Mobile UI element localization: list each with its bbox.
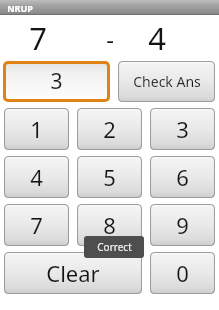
button[interactable]: 3 [150, 108, 215, 150]
staticText: 7 [29, 17, 47, 59]
staticText: 4 [30, 162, 43, 192]
staticText: Check Ans [133, 72, 201, 91]
staticText: 8 [103, 210, 116, 240]
button[interactable]: 8 [77, 204, 142, 246]
staticText: 5 [103, 162, 116, 192]
staticText: NRUP [7, 2, 33, 14]
staticText: 0 [176, 258, 189, 288]
staticText: 9 [176, 210, 189, 240]
button[interactable]: 4 [4, 156, 69, 198]
staticText: 4 [148, 17, 166, 59]
staticText: 6 [176, 162, 189, 192]
staticText: 2 [103, 114, 116, 144]
button[interactable]: 5 [77, 156, 142, 198]
staticText: Clear [46, 258, 100, 288]
button[interactable]: Clear [4, 252, 142, 294]
button[interactable]: 6 [150, 156, 215, 198]
button[interactable]: 9 [150, 204, 215, 246]
other: Correct [84, 236, 144, 258]
button[interactable]: 7 [4, 204, 69, 246]
button[interactable]: 0 [150, 252, 215, 294]
staticText: 1 [30, 114, 43, 144]
staticText: - [106, 22, 114, 55]
button[interactable]: 3 [3, 61, 110, 102]
button[interactable]: 1 [4, 108, 69, 150]
button[interactable]: 2 [77, 108, 142, 150]
staticText: 3 [50, 67, 63, 96]
staticText: 3 [176, 114, 189, 144]
staticText: 7 [30, 210, 43, 240]
button[interactable]: Check Ans [118, 61, 215, 102]
staticText: Correct [97, 240, 132, 254]
